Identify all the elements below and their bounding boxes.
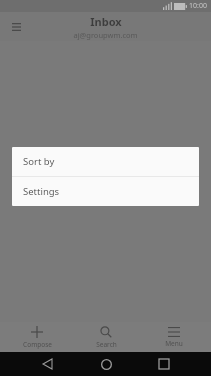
button[interactable]: Search: [75, 322, 137, 352]
staticText: Sort by: [23, 155, 55, 168]
button[interactable]: Menu: [143, 322, 205, 352]
staticText: Menu: [165, 339, 183, 348]
button[interactable]: Sort by: [12, 147, 199, 176]
staticText: Inbox: [90, 14, 122, 29]
button[interactable]: Compose: [6, 322, 68, 352]
button[interactable]: Open navigation drawer: [6, 17, 26, 37]
button[interactable]: Recent apps: [152, 352, 176, 376]
button[interactable]: Home: [94, 352, 118, 376]
staticText: Settings: [23, 185, 60, 198]
staticText: aj@groupwm.com: [73, 30, 138, 40]
staticText: 10:00: [189, 1, 207, 11]
button[interactable]: Settings: [12, 177, 199, 206]
staticText: Search: [96, 340, 117, 349]
button[interactable]: Back: [35, 352, 59, 376]
staticText: Compose: [23, 340, 52, 349]
